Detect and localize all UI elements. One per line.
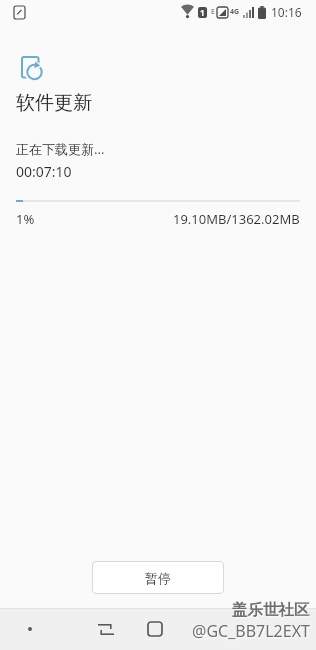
staticText: 19.10MB/1362.02MB bbox=[173, 210, 300, 228]
staticText: 10:16 bbox=[271, 4, 302, 20]
button[interactable] bbox=[93, 616, 119, 642]
staticText: 1% bbox=[16, 210, 35, 228]
staticText: E bbox=[211, 7, 215, 17]
staticText: 软件更新 bbox=[16, 91, 92, 115]
staticText: 1 bbox=[200, 7, 205, 18]
staticText: 00:07:10 bbox=[16, 162, 72, 181]
staticText: 4G bbox=[230, 7, 240, 17]
staticText: 暂停 bbox=[145, 570, 171, 586]
button[interactable] bbox=[20, 619, 40, 639]
staticText: 盖乐世社区 bbox=[232, 600, 310, 620]
staticText: 正在下载更新... bbox=[16, 140, 105, 158]
button[interactable] bbox=[142, 616, 168, 642]
button[interactable]: 暂停 bbox=[92, 561, 224, 594]
staticText: @GC_BB7L2EXT bbox=[192, 620, 310, 642]
